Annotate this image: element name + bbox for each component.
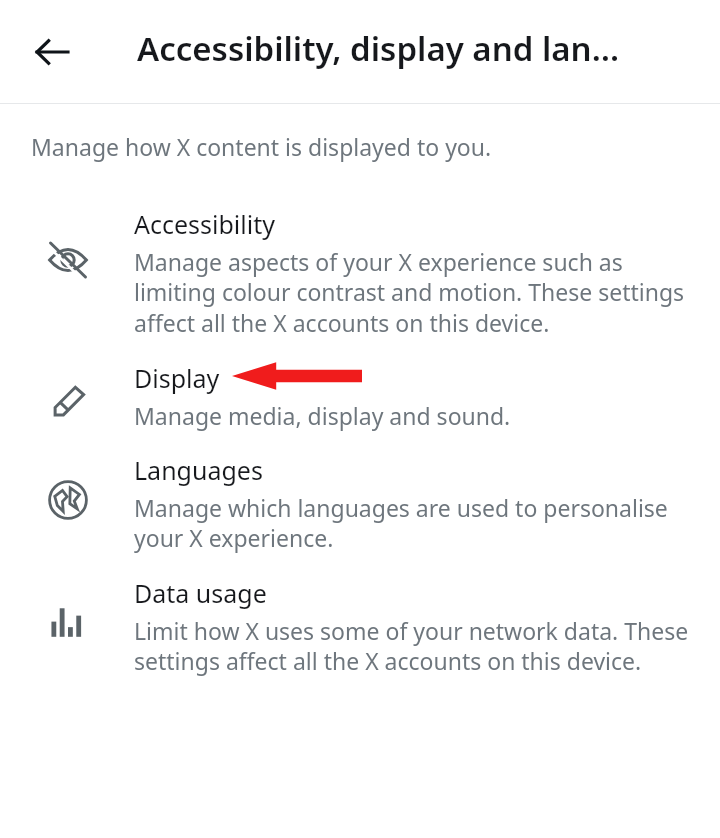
staticText: Accessibility, display and lan… — [137, 26, 620, 71]
staticText: Manage media, display and sound. — [134, 400, 511, 431]
staticText: Accessibility — [134, 207, 275, 241]
button[interactable]: Back — [14, 14, 90, 90]
button[interactable]: Languages — [0, 453, 720, 554]
staticText: Display — [134, 361, 220, 395]
staticText: Languages — [134, 453, 263, 487]
staticText: Manage how X content is displayed to you… — [31, 131, 492, 162]
staticText: Limit how X uses some of your network da… — [134, 615, 698, 677]
staticText: Manage aspects of your X experience such… — [134, 246, 698, 339]
button[interactable]: Data usage — [0, 576, 720, 677]
button[interactable]: Display — [0, 361, 720, 431]
button[interactable]: Accessibility — [0, 207, 720, 339]
staticText: Manage which languages are used to perso… — [134, 492, 698, 554]
staticText: Data usage — [134, 576, 267, 610]
